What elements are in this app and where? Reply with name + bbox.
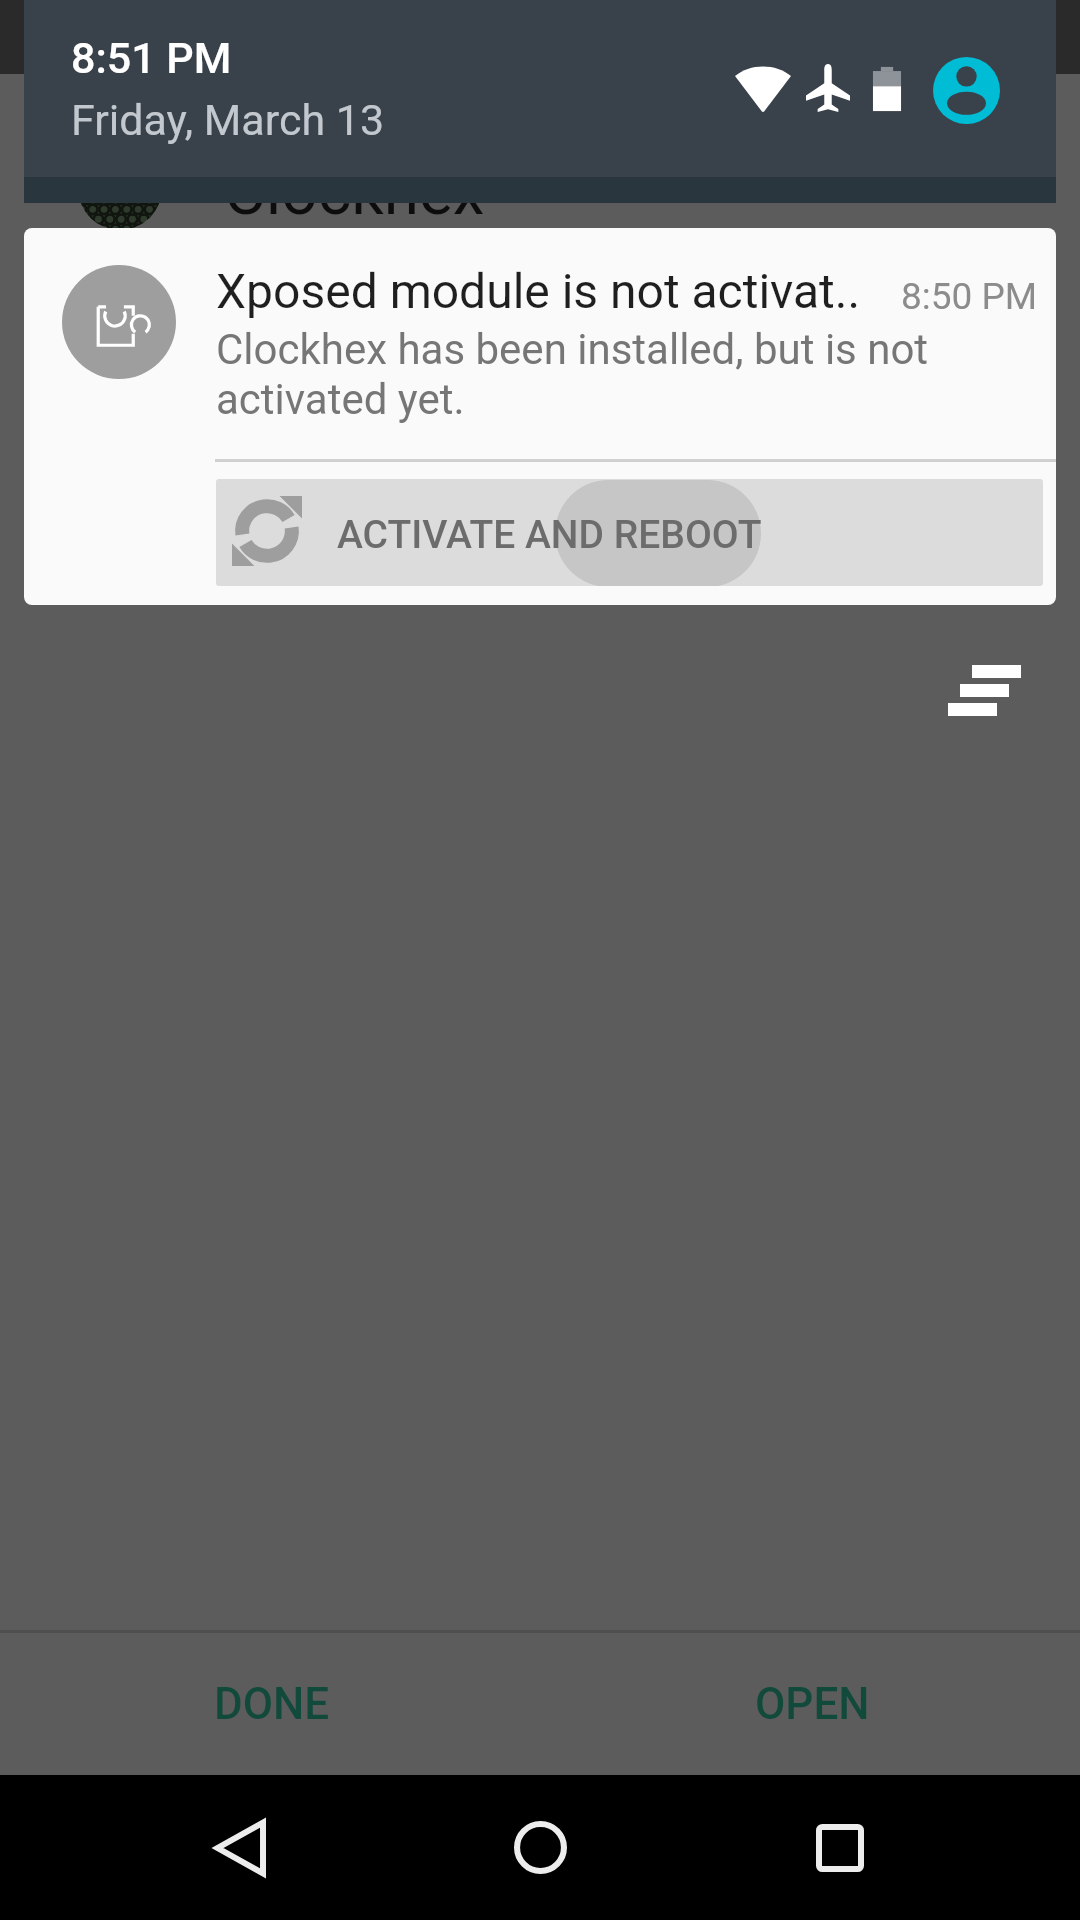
button[interactable]: DONE	[94, 1633, 450, 1775]
staticText: DONE	[214, 1678, 330, 1730]
button[interactable]: Sort	[918, 635, 1052, 745]
button[interactable]: ACTIVATE AND REBOOT	[216, 479, 1043, 586]
button[interactable]: Recent apps	[758, 1775, 922, 1920]
staticText: Clockhex has been installed, but is not …	[216, 325, 929, 424]
staticText: OPEN	[755, 1678, 870, 1730]
staticText: Clockhex	[224, 155, 485, 230]
button[interactable]: Xposed module is not activat..	[24, 228, 1056, 605]
staticText: Friday, March 13	[71, 95, 385, 145]
staticText: Xposed module is not activat..	[216, 263, 861, 319]
staticText: 8:50 PM	[901, 275, 1038, 318]
button[interactable]: Back	[158, 1775, 322, 1920]
staticText: ACTIVATE AND REBOOT	[337, 512, 762, 558]
button[interactable]: Home	[458, 1775, 622, 1920]
button[interactable]: OPEN	[634, 1633, 990, 1775]
staticText: 8:51 PM	[71, 33, 232, 83]
